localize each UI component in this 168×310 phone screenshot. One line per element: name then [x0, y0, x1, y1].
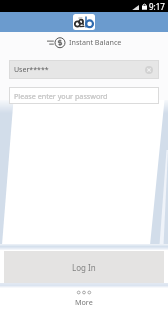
button[interactable]: More: [0, 283, 168, 310]
button[interactable]: Please enter your password: [9, 87, 159, 104]
staticText: User*****: [14, 65, 49, 75]
staticText: Log In: [72, 262, 96, 273]
button[interactable]: Clear text: [145, 66, 153, 74]
staticText: Instant Balance: [69, 37, 122, 47]
button[interactable]: Log In: [4, 251, 164, 283]
staticText: More: [75, 297, 93, 307]
button[interactable]: Instant Balance: [0, 35, 168, 49]
staticText: Please enter your password: [14, 91, 108, 101]
staticText: 9:17: [149, 1, 165, 12]
button[interactable]: Bank logo: [73, 14, 95, 30]
button[interactable]: User*****: [9, 60, 159, 79]
